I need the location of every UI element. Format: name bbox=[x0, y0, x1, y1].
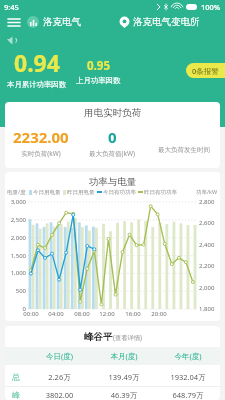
staticText: 3802.00 bbox=[27, 390, 92, 400]
staticText: 9:45 bbox=[4, 2, 19, 12]
staticText: 0 bbox=[22, 305, 26, 313]
staticText: 04:00 bbox=[48, 310, 64, 318]
staticText: 0.94 bbox=[14, 47, 60, 78]
staticText: 实时负荷(kW) bbox=[21, 149, 61, 158]
staticText: 2,600 bbox=[199, 219, 215, 227]
staticText: 1932.04万 bbox=[156, 372, 220, 382]
staticText: 2,000 bbox=[199, 284, 215, 292]
staticText: 今日有功功率 bbox=[103, 189, 136, 196]
staticText: 100% bbox=[201, 2, 221, 12]
button[interactable]: 洛克电气 bbox=[27, 13, 81, 31]
staticText: 2,000 bbox=[10, 234, 26, 242]
staticText: 今年(度) bbox=[156, 351, 220, 361]
staticText: 电量/度 bbox=[7, 188, 26, 196]
staticText: 2,500 bbox=[10, 216, 26, 224]
staticText: 洛克电气变电所 bbox=[133, 16, 200, 28]
staticText: 648.79万 bbox=[156, 390, 220, 400]
staticText: 1,000 bbox=[10, 269, 26, 277]
staticText: 08:00 bbox=[74, 310, 90, 318]
staticText: 上月功率因数 bbox=[76, 76, 121, 85]
staticText: 46.39万 bbox=[92, 390, 156, 400]
staticText: 昨日用电量 bbox=[67, 189, 95, 196]
staticText: 最大负荷值(kW) bbox=[89, 149, 135, 158]
staticText: 本月累计功率因数 bbox=[7, 80, 67, 89]
staticText: 3,000 bbox=[10, 198, 26, 206]
staticText: 00:00 bbox=[23, 310, 39, 318]
staticText: 功率/kW bbox=[196, 188, 218, 196]
staticText: 今日用电量 bbox=[33, 189, 61, 196]
staticText: 功率与电量 bbox=[5, 176, 220, 188]
staticText: 20:00 bbox=[151, 310, 167, 318]
staticText: 今日(度) bbox=[27, 351, 92, 361]
button[interactable]: 峰谷平 bbox=[5, 329, 220, 343]
staticText: 峰谷平 bbox=[84, 331, 113, 343]
staticText: 2,400 bbox=[199, 241, 215, 249]
staticText: 0 bbox=[108, 127, 117, 147]
staticText: 16:00 bbox=[125, 310, 141, 318]
staticText: 2,200 bbox=[199, 262, 215, 270]
button[interactable]: Announcement bbox=[5, 33, 19, 47]
staticText: 本月(度) bbox=[92, 351, 156, 361]
button[interactable]: 洛克电气变电所 bbox=[119, 13, 200, 31]
staticText: 峰 bbox=[12, 390, 20, 400]
button[interactable]: 0条报警 bbox=[186, 63, 225, 78]
staticText: 1,500 bbox=[10, 252, 26, 260]
staticText: 139.49万 bbox=[92, 372, 156, 382]
staticText: 2,800 bbox=[199, 198, 215, 206]
staticText: 昨日有功功率 bbox=[144, 189, 177, 196]
staticText: 最大负荷发生时间 bbox=[158, 146, 210, 154]
staticText: 洛克电气 bbox=[43, 16, 81, 28]
staticText: 2.26万 bbox=[27, 372, 92, 382]
staticText: 12:00 bbox=[99, 310, 115, 318]
staticText: 0.95 bbox=[87, 58, 110, 74]
staticText: 1,800 bbox=[199, 305, 215, 313]
button[interactable]: Menu bbox=[4, 13, 23, 31]
staticText: 用电实时负荷 bbox=[5, 107, 220, 119]
staticText: 500 bbox=[15, 287, 26, 295]
staticText: 0条报警 bbox=[192, 66, 219, 76]
staticText: 总 bbox=[12, 372, 20, 382]
staticText: (查看详情) bbox=[113, 333, 142, 342]
staticText: 2232.00 bbox=[13, 127, 69, 147]
